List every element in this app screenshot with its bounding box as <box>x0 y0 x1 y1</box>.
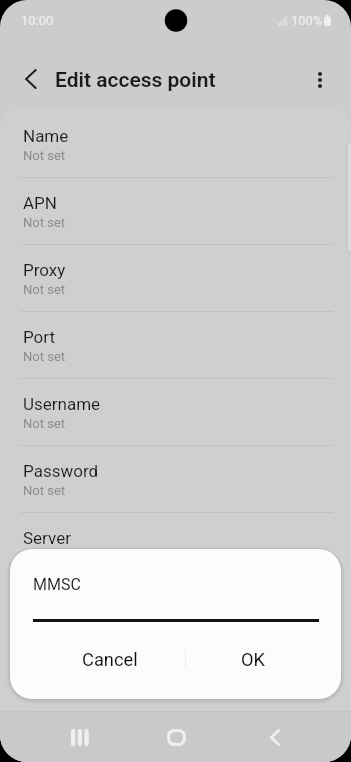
staticText: Edit access point <box>55 68 216 93</box>
button[interactable]: Port <box>0 312 351 379</box>
staticText: Not set <box>23 416 66 431</box>
staticText: Name <box>23 126 69 146</box>
button[interactable]: More options <box>303 63 337 97</box>
button[interactable]: Username <box>0 379 351 446</box>
staticText: OK <box>241 649 266 670</box>
button[interactable]: OK <box>187 636 320 682</box>
staticText: Not set <box>23 215 66 230</box>
staticText: Not set <box>23 483 66 498</box>
button[interactable]: Home <box>144 715 209 760</box>
staticText: MMSC <box>33 575 81 594</box>
button[interactable]: Name <box>0 111 351 178</box>
button[interactable]: Recent apps <box>47 715 112 760</box>
button[interactable]: Cancel <box>22 636 198 682</box>
staticText: 100% <box>291 13 323 28</box>
button[interactable]: Password <box>0 446 351 513</box>
staticText: Password <box>23 461 99 481</box>
button[interactable]: APN <box>0 178 351 245</box>
staticText: Not set <box>23 349 66 364</box>
button[interactable]: Server <box>0 513 351 580</box>
staticText: Not set <box>23 148 66 163</box>
staticText: Proxy <box>23 260 66 280</box>
button[interactable]: Back <box>242 715 307 760</box>
button[interactable]: Proxy <box>0 245 351 312</box>
staticText: APN <box>23 193 57 213</box>
staticText: Username <box>23 394 101 414</box>
staticText: Server <box>23 528 71 548</box>
staticText: Not set <box>23 282 66 297</box>
staticText: Cancel <box>82 649 138 670</box>
staticText: Port <box>23 327 56 347</box>
staticText: 10:00 <box>21 13 54 28</box>
button[interactable]: Navigate up <box>14 62 48 96</box>
